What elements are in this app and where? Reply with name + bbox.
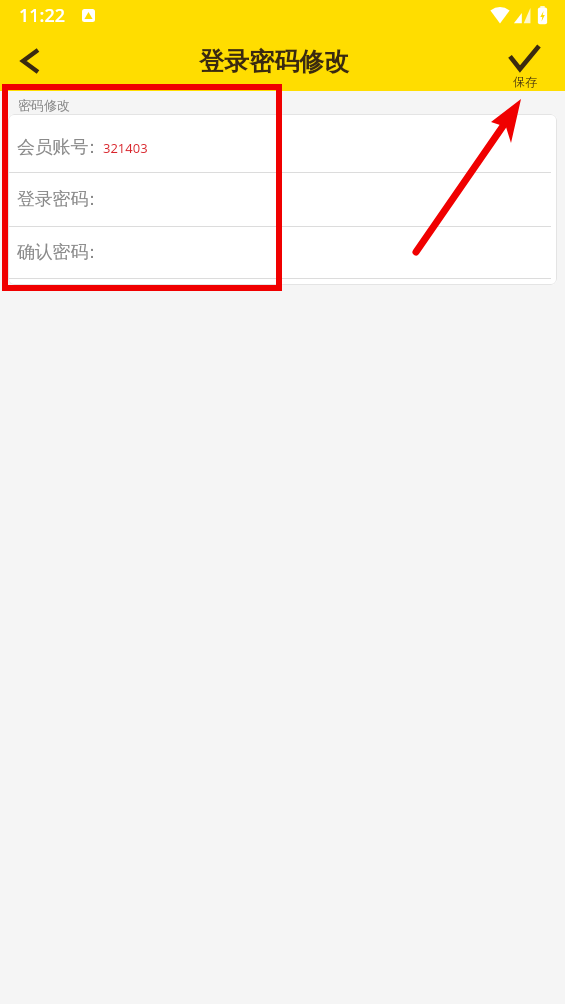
staticText: ： (83, 241, 101, 264)
button[interactable]: 确认密码 (8, 227, 557, 278)
staticText: 确认密码 (17, 241, 89, 264)
staticText: 11:22 (19, 3, 66, 28)
staticText: 会员账号 (17, 136, 89, 159)
staticText: 登录密码 (17, 188, 89, 211)
staticText: 密码修改 (18, 97, 70, 113)
button[interactable]: Save (490, 31, 565, 91)
staticText: 登录密码修改 (199, 46, 349, 77)
staticText: 保存 (513, 74, 537, 89)
staticText: ： (83, 136, 101, 159)
button[interactable]: 登录密码 (8, 173, 557, 226)
staticText: 321403 (103, 139, 148, 157)
staticText: ： (83, 188, 101, 211)
button[interactable]: 会员账号 (8, 114, 557, 172)
button[interactable]: Back (0, 31, 60, 91)
